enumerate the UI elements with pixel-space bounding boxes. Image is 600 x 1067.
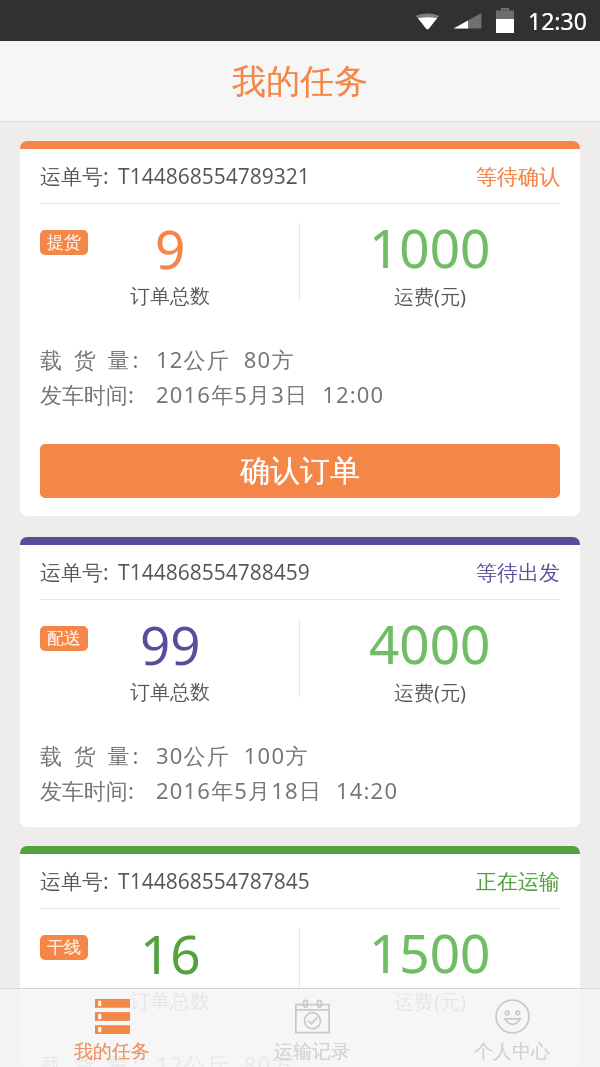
staticText: 我的任务 [74, 1040, 150, 1064]
staticText: 载 货 量: [40, 1049, 142, 1067]
staticText: 运单号: [40, 867, 109, 896]
staticText: 正在运输 [476, 869, 560, 895]
button[interactable]: 运输记录 [212, 993, 412, 1064]
staticText: 个人中心 [474, 1040, 550, 1064]
staticText: 发车时间: [40, 379, 134, 409]
staticText: 9 [155, 212, 186, 284]
staticText: T144868554788459 [118, 558, 310, 587]
staticText: 提货 [47, 232, 81, 253]
staticText: 运费(元) [394, 283, 466, 310]
staticText: 配送 [47, 628, 81, 649]
staticText: 运单号: [40, 558, 109, 587]
other: 个人中心 [495, 999, 530, 1034]
staticText: 载 货 量: [40, 740, 142, 770]
staticText: 12公斤 80方 [156, 1049, 295, 1067]
staticText: 等待确认 [476, 164, 560, 190]
staticText: 发车时间: [40, 775, 134, 805]
button[interactable]: 确认订单 [40, 444, 560, 498]
staticText: 载 货 量: [40, 344, 142, 374]
staticText: 99 [140, 608, 201, 680]
staticText: 2016年5月18日 14:20 [156, 775, 399, 805]
staticText: T144868554787845 [118, 867, 310, 896]
staticText: 4000 [369, 607, 491, 679]
staticText: 干线 [47, 937, 81, 958]
staticText: 等待出发 [476, 560, 560, 586]
staticText: 运单号: [40, 162, 109, 191]
staticText: 30公斤 100方 [156, 740, 309, 770]
staticText: 1000 [369, 211, 491, 283]
staticText: 16 [140, 917, 201, 989]
button[interactable]: 个人中心 [412, 993, 600, 1064]
staticText: 订单总数 [130, 284, 210, 309]
other: 运输记录 [295, 999, 330, 1034]
button[interactable]: 运单号: [20, 846, 580, 1067]
staticText: 订单总数 [130, 680, 210, 705]
staticText: 确认订单 [240, 452, 360, 490]
staticText: 订单总数 [130, 989, 210, 1014]
staticText: T144868554789321 [118, 162, 310, 191]
staticText: 运费(元) [394, 679, 466, 706]
staticText: 运费(元) [394, 988, 466, 1015]
staticText: 1500 [369, 916, 491, 988]
staticText: 我的任务 [232, 60, 368, 103]
button[interactable]: 运单号: [20, 537, 580, 827]
staticText: 12公斤 80方 [156, 344, 295, 374]
other: 我的任务 [95, 999, 130, 1034]
button[interactable]: 我的任务 [12, 993, 212, 1064]
staticText: 运输记录 [274, 1040, 350, 1064]
staticText: 2016年5月3日 12:00 [156, 379, 385, 409]
staticText: 12:30 [528, 5, 587, 36]
button[interactable]: 运单号: [20, 141, 580, 516]
